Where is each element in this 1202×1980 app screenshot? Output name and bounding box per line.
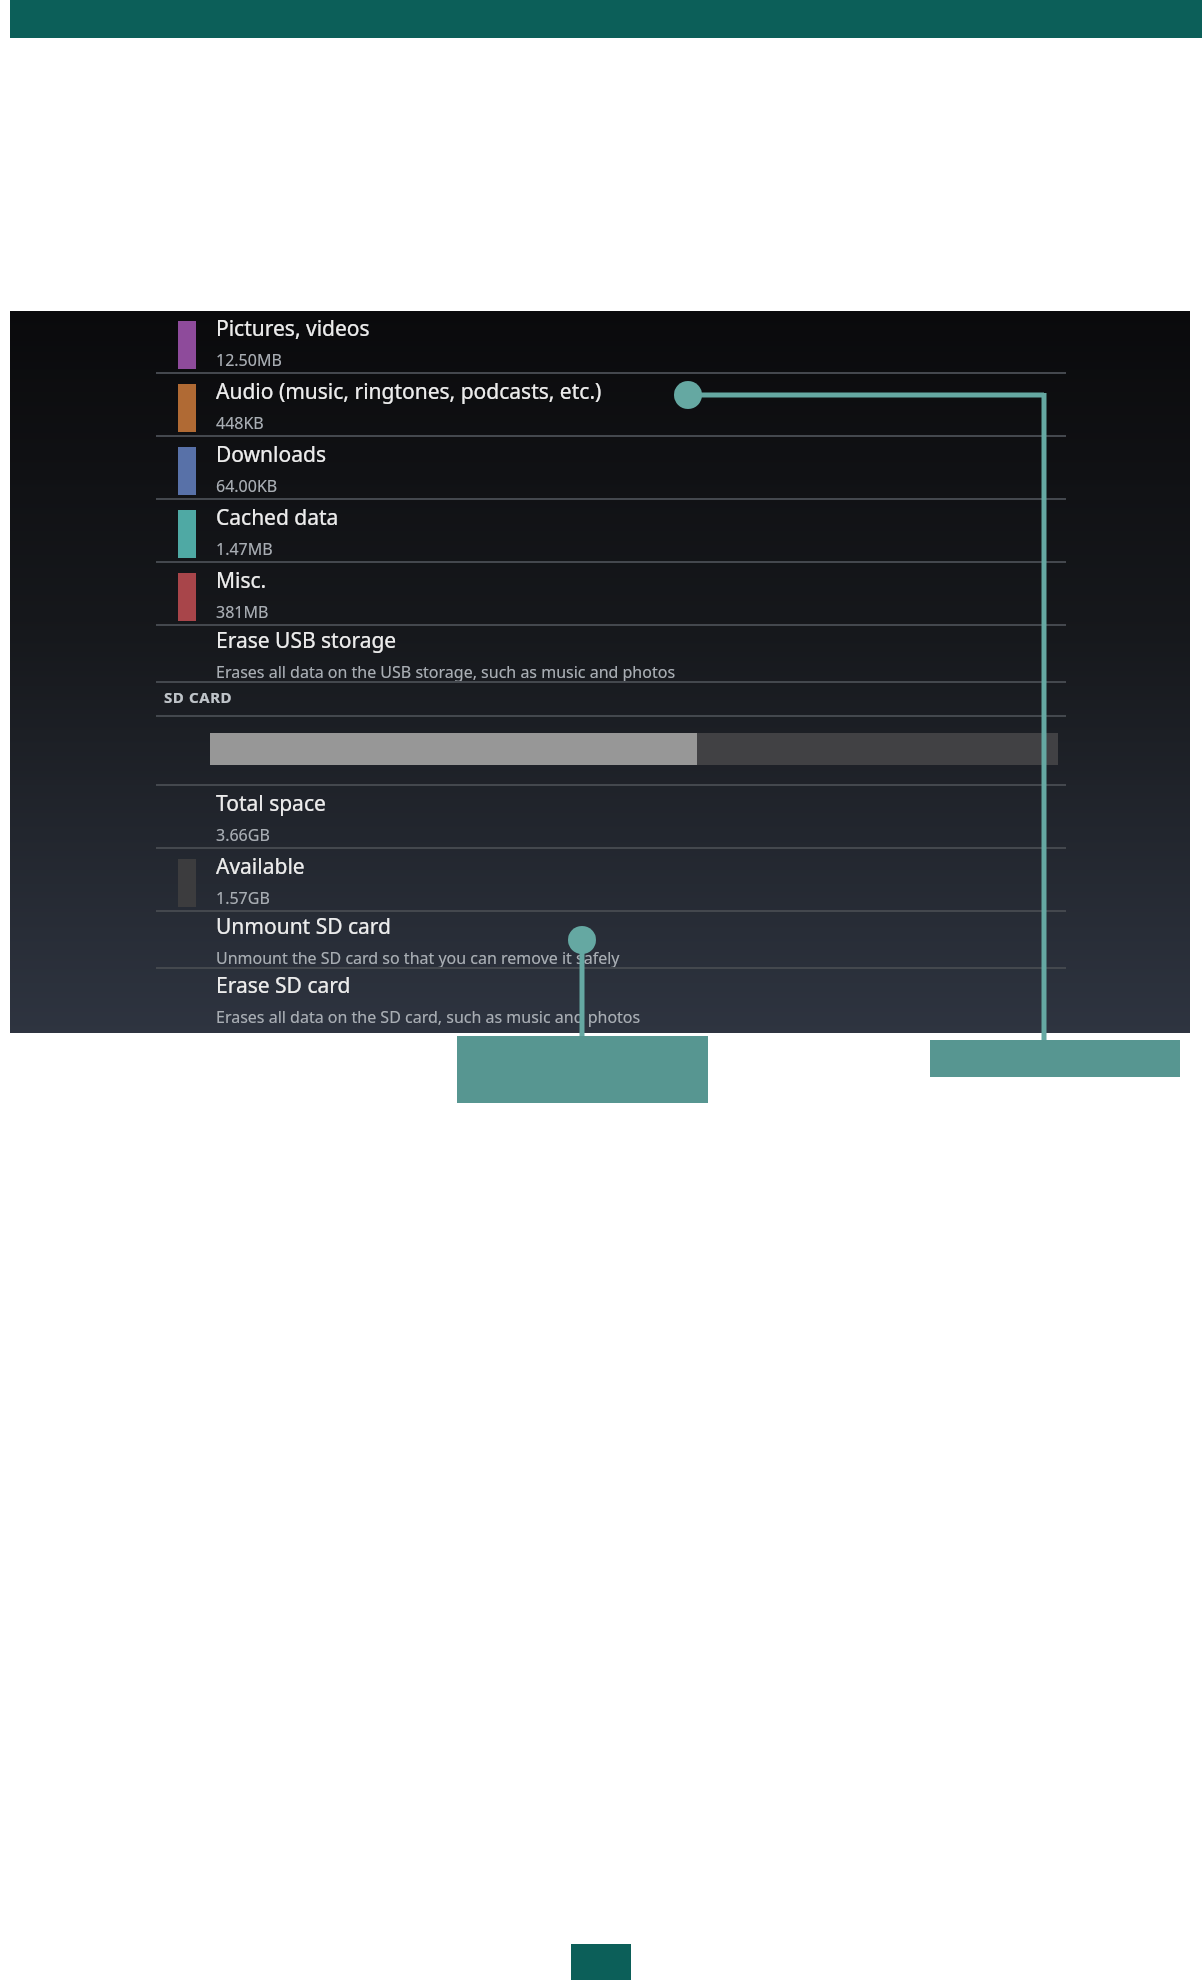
staticText: Erase SD card (216, 971, 351, 1000)
staticText: Erases all data on the USB storage, such… (216, 661, 676, 683)
staticText: Unmount SD card (216, 912, 392, 941)
staticText: Erase USB storage (216, 626, 397, 655)
staticText: 1.47MB (216, 538, 273, 560)
staticText: 381MB (216, 601, 269, 623)
staticText: Misc. (216, 566, 267, 595)
staticText: 12.50MB (216, 349, 282, 371)
button[interactable]: Cached data (10, 500, 1190, 563)
staticText: 448KB (216, 412, 264, 434)
staticText: Available (216, 852, 305, 881)
staticText: Unmount the SD card so that you can remo… (216, 947, 620, 969)
button[interactable]: Unmount SD card (10, 912, 1190, 969)
staticText: 64.00KB (216, 475, 278, 497)
button[interactable]: Erase USB storage (10, 626, 1190, 683)
staticText: Cached data (216, 503, 339, 532)
staticText: 3.66GB (216, 824, 270, 846)
staticText: 1.57GB (216, 887, 270, 909)
staticText: Total space (216, 789, 326, 818)
staticText: Pictures, videos (216, 314, 370, 343)
button[interactable]: Pictures, videos (10, 311, 1190, 374)
button[interactable]: Audio (music, ringtones, podcasts, etc.) (10, 374, 1190, 437)
staticText: Downloads (216, 440, 326, 469)
button[interactable]: Available (10, 849, 1190, 912)
staticText: SD CARD (164, 687, 233, 707)
staticText: Erases all data on the SD card, such as … (216, 1006, 641, 1028)
staticText: Audio (music, ringtones, podcasts, etc.) (216, 377, 602, 406)
button[interactable]: Erase SD card (10, 969, 1190, 1029)
button[interactable]: Downloads (10, 437, 1190, 500)
button[interactable]: Misc. (10, 563, 1190, 626)
button[interactable]: Total space (10, 786, 1190, 849)
